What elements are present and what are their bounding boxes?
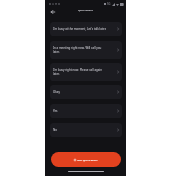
staticText: I'm busy at the moment, Let's talk later… <box>53 27 107 31</box>
staticText: Yes <box>53 109 107 113</box>
staticText: Okay <box>53 90 107 94</box>
button[interactable]: I'm busy right now. Please call again la… <box>50 63 122 81</box>
staticText: ADD QUICK REPLY <box>77 158 98 161</box>
button[interactable]: Okay <box>50 85 122 99</box>
staticText: I'm busy right now. Please call again la… <box>53 68 107 76</box>
button[interactable]: Back <box>48 7 57 16</box>
button[interactable]: In a meeting right now. Will call you la… <box>50 41 122 59</box>
button[interactable]: ADD QUICK REPLY <box>51 152 121 167</box>
button[interactable]: Yes <box>50 104 122 118</box>
button[interactable]: No <box>50 123 122 137</box>
button[interactable]: I'm busy at the moment, Let's talk later… <box>50 22 122 36</box>
staticText: No <box>53 128 107 132</box>
staticText: Quick replies <box>78 8 93 11</box>
staticText: 5G <box>107 2 111 6</box>
staticText: In a meeting right now. Will call you la… <box>53 46 107 54</box>
